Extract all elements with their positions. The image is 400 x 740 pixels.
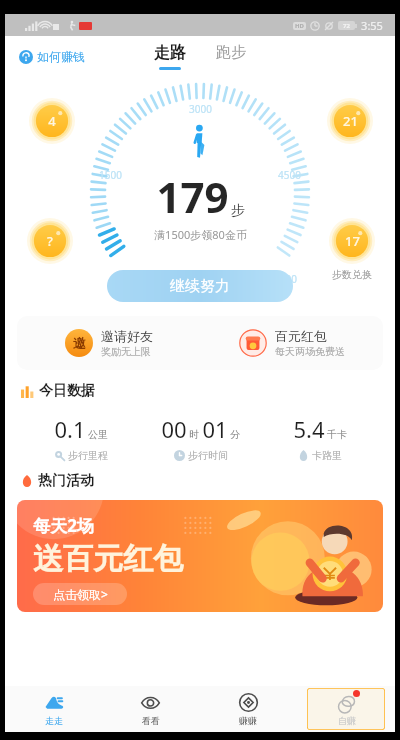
button[interactable]: 如何赚钱 [19,49,85,64]
button[interactable]: 每天2场 [17,500,383,612]
button[interactable]: 走走 [5,686,102,732]
staticText: 步行里程 [68,449,108,462]
staticText: 步 [231,202,245,220]
staticText: 3000 [189,102,212,116]
staticText: ? [47,232,53,250]
staticText: 百元红包 [275,328,327,344]
staticText: 赚赚 [239,715,257,726]
button[interactable]: 看看 [102,686,199,732]
staticText: 继续努力 [170,277,230,296]
staticText: 热门活动 [38,472,94,490]
staticText: 4 [48,112,56,130]
staticText: 送百元红包 [33,540,183,578]
button[interactable]: 继续努力 [107,270,293,302]
button[interactable]: 21 [327,98,373,144]
button[interactable]: ? [27,218,73,264]
staticText: 1500 [99,168,122,182]
staticText: 分 [230,428,240,441]
button[interactable]: 5.4 [260,414,379,462]
staticText: 邀 [73,335,86,351]
staticText: 走路 [154,43,186,63]
button[interactable]: 邀 [17,316,200,370]
staticText: 21 [343,112,358,130]
button[interactable]: 赚赚 [199,686,297,732]
staticText: 走走 [45,715,63,726]
staticText: 步行时间 [188,449,228,462]
button[interactable]: 0.1 [21,414,141,462]
staticText: 17 [345,232,360,250]
staticText: 3:55 [361,18,383,33]
button[interactable]: 走路 [154,43,186,70]
staticText: 每天两场免费送 [275,345,345,358]
button[interactable]: 跑步 [216,43,246,62]
staticText: 4500 [278,168,301,182]
staticText: 每天2场 [33,514,94,537]
staticText: 179 [156,168,229,225]
staticText: 跑步 [216,43,246,62]
button[interactable]: 百元红包 [200,316,383,370]
staticText: 01 [202,414,228,444]
staticText: 奖励无上限 [101,345,151,358]
staticText: 看看 [142,715,160,726]
staticText: 满1500步领80金币 [154,227,247,242]
staticText: 00 [161,414,187,444]
staticText: 时 [189,428,199,441]
button[interactable]: 00 [141,414,260,462]
button[interactable]: 4 [29,98,75,144]
staticText: 今日数据 [39,382,95,400]
staticText: 公里 [88,428,108,441]
staticText: 自赚 [338,715,356,726]
staticText: HD [295,22,304,30]
staticText: 卡路里 [312,449,342,462]
button[interactable]: 17 [329,218,375,264]
staticText: 千卡 [327,428,347,441]
staticText: 邀请好友 [101,328,153,344]
staticText: 72 [343,22,350,30]
staticText: 6000 [274,272,297,286]
staticText: 0.1 [54,414,86,444]
staticText: 如何赚钱 [37,49,85,64]
staticText: 5.4 [293,414,325,444]
button[interactable]: 自赚 [307,688,385,730]
staticText: 步数兑换 [332,268,372,281]
staticText: 点击领取> [53,586,108,602]
